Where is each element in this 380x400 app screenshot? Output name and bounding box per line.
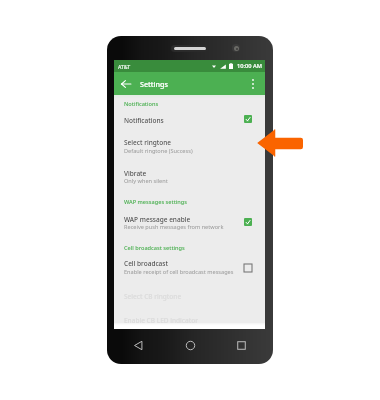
button[interactable]: Enabled [243,114,253,124]
button[interactable] [114,254,265,280]
button[interactable]: Disabled [243,263,253,273]
staticText: Notifications [124,116,164,125]
staticText: Vibrate [124,169,147,178]
staticText: Notifications [124,100,159,108]
staticText: Enable CB LED indicator [124,316,198,325]
button[interactable] [114,210,265,236]
staticText: WAP messages settings [124,198,187,206]
other: Pointer [256,128,303,158]
staticText: Select CB ringtone [124,292,182,301]
staticText: Receive push messages from network [124,223,224,231]
button[interactable] [114,133,265,159]
staticText: Select ringtone [124,138,172,147]
button[interactable]: Navigate up [116,73,135,95]
button[interactable] [114,110,265,129]
staticText: Enable receipt of cell broadcast message… [124,268,234,276]
staticText: Settings [140,79,168,89]
staticText: Default ringtone (Success) [124,147,193,155]
button[interactable] [114,164,265,190]
button[interactable]: Home [179,333,201,357]
button[interactable]: Enabled [243,217,253,227]
staticText: Only when silent [124,177,168,185]
button[interactable]: More options [246,73,260,95]
staticText: AT&T [118,63,131,70]
staticText: WAP message enable [124,215,191,224]
staticText: Cell broadcast settings [124,244,185,252]
staticText: 10:00 AM [237,62,262,70]
staticText: Cell broadcast [124,259,168,268]
button[interactable]: Back [127,333,149,357]
button[interactable]: Recent apps [230,333,252,357]
button[interactable] [114,312,265,332]
